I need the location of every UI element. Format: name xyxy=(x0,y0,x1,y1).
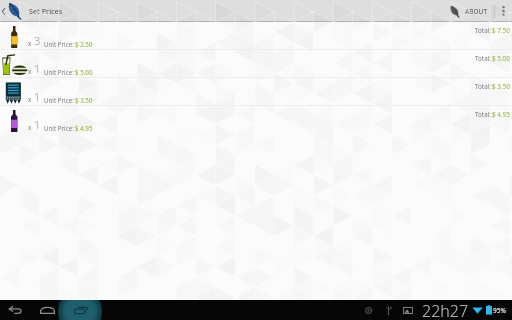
staticText: $ 5.00 xyxy=(492,54,510,63)
staticText: 22h27 xyxy=(422,300,469,320)
button[interactable]: Home xyxy=(36,300,58,320)
staticText: Set Prices xyxy=(29,6,63,16)
staticText: $ 5.00 xyxy=(75,68,93,76)
staticText: 1 xyxy=(34,61,41,76)
staticText: Total: xyxy=(475,54,491,63)
button[interactable]: x xyxy=(0,50,512,77)
button[interactable]: Navigate up xyxy=(0,0,26,22)
staticText: $ 4.95 xyxy=(492,110,510,119)
staticText: x xyxy=(28,95,32,104)
staticText: Total: xyxy=(475,82,491,91)
staticText: $ 2.50 xyxy=(75,40,93,48)
button[interactable]: x xyxy=(0,78,512,105)
staticText: 1 xyxy=(34,89,41,104)
staticText: $ 3.50 xyxy=(75,96,93,104)
staticText: x xyxy=(28,39,32,48)
staticText: Total: xyxy=(475,26,491,35)
button[interactable]: Recent apps xyxy=(58,300,102,320)
staticText: Unit Price: xyxy=(44,124,74,132)
staticText: $ 4.95 xyxy=(75,124,93,132)
staticText: ABOUT xyxy=(465,7,488,16)
staticText: Total: xyxy=(475,110,491,119)
staticText: $ 3.50 xyxy=(492,82,510,91)
staticText: Unit Price: xyxy=(44,68,74,76)
button[interactable]: Back xyxy=(0,300,36,320)
staticText: $ 7.50 xyxy=(492,26,510,35)
staticText: Unit Price: xyxy=(44,96,74,104)
button[interactable]: x xyxy=(0,106,512,133)
staticText: 95% xyxy=(493,306,506,315)
staticText: Unit Price: xyxy=(44,40,74,48)
staticText: x xyxy=(28,123,32,132)
button[interactable]: ABOUT xyxy=(444,0,494,22)
staticText: x xyxy=(28,67,32,76)
staticText: 1 xyxy=(34,117,41,132)
staticText: 3 xyxy=(34,33,41,48)
button[interactable]: x xyxy=(0,22,512,49)
other: Navigate up xyxy=(1,7,6,16)
button[interactable]: More options xyxy=(495,0,512,22)
